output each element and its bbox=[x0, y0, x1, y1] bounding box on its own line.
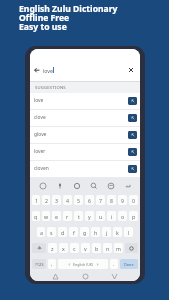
button[interactable]: cloven bbox=[30, 161, 140, 177]
staticText: r bbox=[66, 213, 69, 220]
button[interactable]: Home bbox=[81, 272, 90, 281]
staticText: 0 bbox=[132, 197, 135, 204]
staticText: e bbox=[55, 213, 58, 220]
button[interactable]: Back bbox=[30, 59, 140, 81]
staticText: q bbox=[34, 213, 38, 220]
button[interactable]: 7 bbox=[96, 195, 105, 205]
button[interactable]: ?123 bbox=[32, 259, 46, 269]
button[interactable]: Use word bbox=[128, 148, 137, 156]
button[interactable]: Settings bbox=[72, 181, 81, 190]
button[interactable]: 5 bbox=[74, 195, 83, 205]
button[interactable]: n bbox=[103, 243, 112, 253]
staticText: 1 bbox=[35, 197, 38, 204]
staticText: love bbox=[34, 97, 44, 104]
button[interactable]: k bbox=[113, 227, 122, 237]
button[interactable]: a bbox=[37, 227, 45, 237]
staticText: n bbox=[106, 245, 110, 252]
button[interactable]: 9 bbox=[118, 195, 127, 205]
button[interactable]: clove bbox=[30, 110, 140, 126]
staticText: b bbox=[95, 245, 99, 252]
button[interactable]: l bbox=[124, 227, 133, 237]
button[interactable]: d bbox=[58, 227, 67, 237]
staticText: 7 bbox=[99, 197, 102, 204]
button[interactable]: g bbox=[80, 227, 89, 237]
button[interactable]: i bbox=[107, 211, 116, 221]
button[interactable]: Back bbox=[30, 59, 43, 81]
button[interactable]: Use word bbox=[128, 97, 137, 105]
button[interactable]: u bbox=[96, 211, 105, 221]
button[interactable]: f bbox=[69, 227, 78, 237]
button[interactable]: Recents bbox=[110, 272, 119, 281]
staticText: lover bbox=[34, 148, 46, 155]
button[interactable]: Use word bbox=[128, 114, 137, 122]
button[interactable]: p bbox=[129, 211, 138, 221]
staticText: f bbox=[73, 229, 75, 236]
staticText: clove bbox=[34, 114, 46, 121]
button[interactable]: 4 bbox=[63, 195, 72, 205]
button[interactable]: t bbox=[74, 211, 83, 221]
button[interactable]: Use word bbox=[128, 131, 137, 139]
staticText: 3 bbox=[55, 197, 58, 204]
button[interactable]: y bbox=[85, 211, 94, 221]
button[interactable]: v bbox=[81, 243, 90, 253]
button[interactable]: Emoji bbox=[38, 181, 47, 190]
button[interactable]: s bbox=[47, 227, 56, 237]
button[interactable]: , bbox=[48, 259, 56, 269]
staticText: d bbox=[61, 229, 65, 236]
button[interactable]: Use word bbox=[128, 165, 137, 173]
staticText: t bbox=[78, 213, 80, 220]
button[interactable]: q bbox=[32, 211, 40, 221]
staticText: 5 bbox=[77, 197, 80, 204]
button[interactable]: Stickers bbox=[106, 181, 115, 190]
button[interactable]: b bbox=[92, 243, 101, 253]
button[interactable]: More bbox=[123, 181, 132, 190]
button[interactable]: love bbox=[30, 93, 140, 109]
button[interactable]: r bbox=[63, 211, 72, 221]
button[interactable]: 2 bbox=[42, 195, 50, 205]
button[interactable]: z bbox=[48, 243, 57, 253]
button[interactable]: 8 bbox=[107, 195, 116, 205]
button[interactable]: . bbox=[110, 259, 118, 269]
button[interactable]: h bbox=[91, 227, 100, 237]
staticText: 6 bbox=[88, 197, 91, 204]
button[interactable]: Voice input bbox=[55, 181, 64, 190]
staticText: p bbox=[132, 213, 136, 220]
button[interactable]: Done bbox=[120, 259, 138, 269]
staticText: l bbox=[128, 229, 130, 236]
staticText: z bbox=[51, 245, 54, 252]
staticText: c bbox=[73, 245, 76, 252]
button[interactable]: 6 bbox=[85, 195, 94, 205]
button[interactable]: o bbox=[118, 211, 127, 221]
button[interactable]: English (UK) bbox=[58, 259, 108, 269]
button[interactable]: Clear bbox=[124, 59, 138, 81]
staticText: 9 bbox=[121, 197, 124, 204]
staticText: ?123 bbox=[35, 262, 44, 267]
button[interactable]: Search bbox=[89, 181, 98, 190]
button[interactable]: m bbox=[114, 243, 123, 253]
button[interactable]: glove bbox=[30, 127, 140, 143]
staticText: o bbox=[121, 213, 125, 220]
button[interactable]: Back bbox=[51, 272, 60, 281]
staticText: Done bbox=[124, 262, 134, 267]
staticText: x bbox=[62, 245, 65, 252]
button[interactable]: Shift bbox=[32, 243, 46, 253]
button[interactable]: w bbox=[42, 211, 50, 221]
button[interactable]: 3 bbox=[52, 195, 61, 205]
button[interactable]: 1 bbox=[32, 195, 40, 205]
button[interactable]: lover bbox=[30, 144, 140, 160]
staticText: English (UK) bbox=[73, 262, 94, 267]
button[interactable]: e bbox=[52, 211, 61, 221]
staticText: u bbox=[99, 213, 103, 220]
button[interactable]: Backspace bbox=[125, 243, 138, 253]
button[interactable]: c bbox=[70, 243, 79, 253]
staticText: j bbox=[106, 229, 108, 236]
staticText: glove bbox=[34, 131, 47, 138]
staticText: w bbox=[44, 213, 49, 220]
staticText: cloven bbox=[34, 165, 49, 172]
button[interactable]: 0 bbox=[129, 195, 138, 205]
button[interactable]: x bbox=[59, 243, 68, 253]
button[interactable]: j bbox=[102, 227, 111, 237]
staticText: s bbox=[50, 229, 53, 236]
staticText: love bbox=[43, 67, 53, 74]
staticText: v bbox=[84, 245, 87, 252]
